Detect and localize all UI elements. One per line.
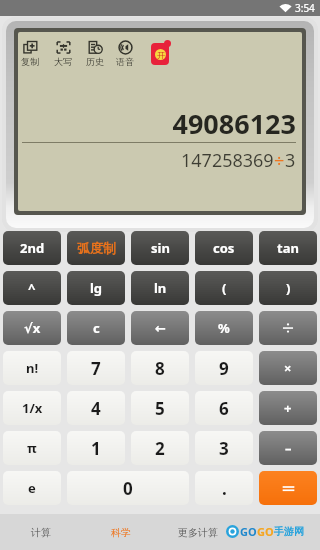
staticText: + [284, 399, 292, 417]
staticText: 7 [91, 357, 101, 380]
button[interactable]: 1 [67, 431, 125, 465]
button[interactable]: 6 [195, 391, 253, 425]
button[interactable]: √x [3, 311, 61, 345]
staticText: ( [222, 279, 227, 297]
button[interactable]: 历史 [79, 38, 111, 67]
staticText: 历史 [86, 56, 104, 67]
staticText: 1 [91, 437, 101, 460]
staticText: 3 [285, 148, 296, 173]
staticText: sin [151, 239, 170, 257]
button[interactable]: 复制 [14, 38, 46, 67]
button[interactable]: 5 [131, 391, 189, 425]
staticText: GO [240, 524, 257, 539]
button[interactable]: 4 [67, 391, 125, 425]
button[interactable]: 科学 [98, 514, 143, 550]
staticText: 0 [123, 477, 133, 500]
button[interactable]: × [259, 351, 317, 385]
button[interactable]: lg [67, 271, 125, 305]
staticText: lg [90, 279, 103, 297]
button[interactable] [259, 311, 317, 345]
button[interactable]: 开通会员 [148, 38, 175, 68]
staticText: 科学 [111, 526, 131, 539]
button[interactable]: π [3, 431, 61, 465]
button[interactable]: cos [195, 231, 253, 265]
staticText: 5 [155, 397, 165, 420]
button[interactable]: sin [131, 231, 189, 265]
button[interactable]: 大写 [47, 38, 79, 67]
staticText: 8 [155, 357, 165, 380]
staticText: 2 [155, 437, 165, 460]
button[interactable]: ln [131, 271, 189, 305]
staticText: . [222, 477, 227, 500]
button[interactable]: 8 [131, 351, 189, 385]
button[interactable]: e [3, 471, 61, 505]
staticText: tan [277, 239, 299, 257]
button[interactable]: 2nd [3, 231, 61, 265]
button[interactable]: ← [131, 311, 189, 345]
button[interactable]: tan [259, 231, 317, 265]
button[interactable]: 2 [131, 431, 189, 465]
staticText: 语音 [116, 56, 134, 67]
button[interactable]: ^ [3, 271, 61, 305]
staticText: 开 [157, 50, 165, 60]
button[interactable]: c [67, 311, 125, 345]
button[interactable]: 更多计算 [170, 514, 226, 550]
button[interactable]: ) [259, 271, 317, 305]
staticText: ln [154, 279, 167, 297]
staticText: GO [257, 524, 274, 539]
staticText: % [218, 319, 230, 337]
staticText: π [27, 439, 37, 457]
button[interactable]: ( [195, 271, 253, 305]
button[interactable]: % [195, 311, 253, 345]
button[interactable]: 0 [67, 471, 189, 505]
staticText: ) [286, 279, 291, 297]
button[interactable]: 计算 [18, 514, 64, 550]
button[interactable]: 7 [67, 351, 125, 385]
button[interactable]: 3 [195, 431, 253, 465]
button[interactable]: GOGO手游网 [226, 523, 304, 540]
staticText: 9 [219, 357, 229, 380]
staticText: ÷ [274, 148, 285, 173]
staticText: 4 [91, 397, 101, 420]
staticText: – [285, 439, 292, 457]
staticText: n! [26, 359, 39, 377]
staticText: ← [155, 321, 166, 336]
staticText: 大写 [54, 56, 72, 67]
button[interactable] [259, 471, 317, 505]
button[interactable]: 9 [195, 351, 253, 385]
button[interactable]: + [259, 391, 317, 425]
staticText: 3 [219, 437, 229, 460]
staticText: × [284, 359, 292, 377]
staticText: 3:54 [295, 1, 315, 15]
staticText: e [28, 479, 36, 497]
staticText: c [93, 319, 100, 337]
staticText: ^ [28, 279, 36, 297]
staticText: 弧度制 [77, 240, 116, 256]
staticText: 49086123 [19, 105, 296, 142]
staticText: 计算 [31, 526, 51, 539]
staticText: √x [24, 319, 41, 337]
button[interactable]: 1/x [3, 391, 61, 425]
staticText: 6 [219, 397, 229, 420]
button[interactable]: – [259, 431, 317, 465]
staticText: 手游网 [274, 525, 304, 538]
staticText: 147258369 [181, 148, 274, 173]
staticText: 更多计算 [178, 526, 218, 539]
staticText: cos [213, 239, 235, 257]
button[interactable]: n! [3, 351, 61, 385]
button[interactable]: 语音 [109, 38, 141, 67]
staticText: 复制 [21, 56, 39, 67]
staticText: 2nd [20, 239, 45, 257]
staticText: 1/x [22, 399, 43, 417]
button[interactable]: . [195, 471, 253, 505]
button[interactable]: 弧度制 [67, 231, 125, 265]
